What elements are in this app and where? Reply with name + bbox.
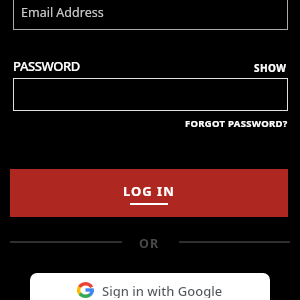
- staticText: FORGOT PASSWORD?: [185, 117, 288, 130]
- button[interactable]: FORGOT PASSWORD?: [185, 117, 288, 130]
- staticText: OR: [139, 235, 160, 252]
- staticText: Sign in with Google: [102, 282, 223, 298]
- button[interactable]: LOG IN: [10, 169, 288, 217]
- staticText: Email Address: [21, 4, 104, 21]
- button[interactable]: Sign in with Google: [30, 273, 270, 300]
- staticText: PASSWORD: [13, 57, 80, 75]
- staticText: SHOW: [254, 61, 287, 75]
- button[interactable]: SHOW: [254, 61, 287, 75]
- button[interactable]: [13, 78, 288, 111]
- staticText: LOG IN: [123, 182, 175, 200]
- button[interactable]: Email Address: [13, 0, 288, 30]
